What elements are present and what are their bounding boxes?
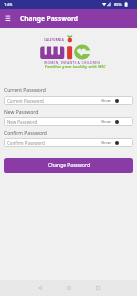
staticText: WOMEN, INFANTS & CHILDREN <box>44 60 101 65</box>
button[interactable]: Password help <box>115 141 119 145</box>
staticText: 85% <box>114 2 122 7</box>
staticText: Change Password <box>20 14 78 23</box>
staticText: Change Password <box>48 162 90 169</box>
staticText: New Password <box>7 119 38 125</box>
button[interactable]: Current Password <box>4 96 133 105</box>
staticText: New Password <box>4 109 39 116</box>
staticText: 1:55 <box>4 2 13 8</box>
staticText: Show <box>101 98 111 103</box>
staticText: Show <box>101 119 111 124</box>
button[interactable]: Open navigation menu <box>3 13 13 23</box>
staticText: Current Password <box>4 87 46 94</box>
button[interactable]: Change Password <box>4 158 133 173</box>
staticText: Current Password <box>7 98 44 104</box>
staticText: Confirm Password <box>4 130 47 137</box>
button[interactable]: Confirm Password <box>4 138 133 147</box>
staticText: Families grow healthy with WIC <box>45 64 106 69</box>
staticText: CALIFORNIA <box>44 38 64 42</box>
staticText: Show <box>101 140 111 145</box>
button[interactable]: New Password <box>4 117 133 126</box>
button[interactable]: Password help <box>115 120 119 124</box>
staticText: Confirm Password <box>7 140 45 146</box>
button[interactable]: Password help <box>115 99 119 103</box>
